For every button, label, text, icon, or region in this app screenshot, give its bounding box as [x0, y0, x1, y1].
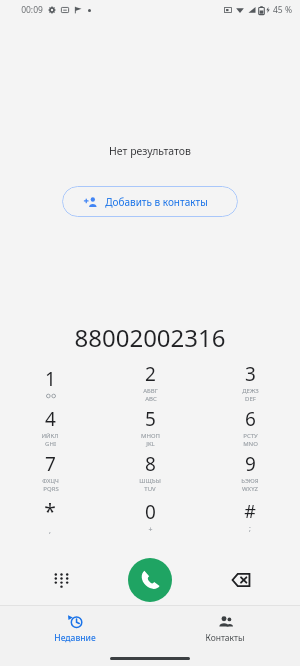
staticText: 3: [245, 361, 256, 387]
button[interactable]: Show keypad: [44, 563, 78, 597]
staticText: Добавить в контакты: [105, 195, 208, 209]
staticText: 5: [145, 406, 156, 432]
staticText: TUV: [144, 485, 156, 493]
staticText: JKL: [146, 440, 155, 448]
button[interactable]: 5: [100, 406, 200, 451]
staticText: 00:09: [21, 4, 43, 16]
staticText: ДЕЖЗ: [242, 387, 259, 395]
staticText: ,: [49, 526, 51, 536]
button[interactable]: 8: [100, 451, 200, 496]
staticText: WXYZ: [242, 485, 258, 493]
staticText: 6: [245, 406, 256, 432]
button[interactable]: #: [200, 496, 300, 541]
staticText: ШЩЪЫ: [139, 477, 161, 485]
staticText: 0: [145, 499, 156, 525]
staticText: 8: [145, 451, 156, 477]
button[interactable]: 2: [100, 361, 200, 406]
button[interactable]: Добавить в контакты: [62, 186, 238, 217]
staticText: 1: [45, 366, 56, 392]
staticText: GHI: [45, 440, 56, 448]
button[interactable]: Call: [128, 558, 172, 602]
staticText: ФХЦЧ: [42, 477, 59, 485]
staticText: МНОП: [141, 432, 160, 440]
staticText: РСТУ: [243, 432, 258, 440]
button[interactable]: 9: [200, 451, 300, 496]
staticText: MNO: [243, 440, 258, 448]
staticText: ABC: [145, 395, 157, 403]
staticText: 45 %: [273, 4, 292, 16]
staticText: ЬЭЮЯ: [241, 477, 259, 485]
staticText: PQRS: [43, 485, 59, 493]
staticText: АБВГ: [143, 387, 158, 395]
staticText: 88002002316: [74, 321, 226, 354]
button[interactable]: Backspace: [224, 563, 258, 597]
button[interactable]: Контакты: [150, 606, 300, 651]
button[interactable]: *: [0, 496, 100, 541]
staticText: Нет результатов: [109, 144, 191, 158]
button[interactable]: Недавние: [0, 606, 150, 651]
staticText: 2: [145, 361, 156, 387]
button[interactable]: 7: [0, 451, 100, 496]
button[interactable]: 0: [100, 496, 200, 541]
staticText: #: [244, 499, 256, 524]
staticText: DEF: [245, 395, 256, 403]
staticText: Контакты: [205, 632, 245, 644]
staticText: ;: [249, 524, 251, 534]
staticText: Недавние: [54, 632, 96, 644]
staticText: 4: [45, 406, 56, 432]
staticText: +: [148, 525, 153, 535]
staticText: 9: [245, 451, 256, 477]
button[interactable]: 4: [0, 406, 100, 451]
button[interactable]: 6: [200, 406, 300, 451]
staticText: *: [44, 497, 56, 526]
staticText: 7: [45, 451, 56, 477]
button[interactable]: 3: [200, 361, 300, 406]
button[interactable]: 1: [0, 361, 100, 406]
staticText: ИЙКЛ: [41, 432, 59, 440]
